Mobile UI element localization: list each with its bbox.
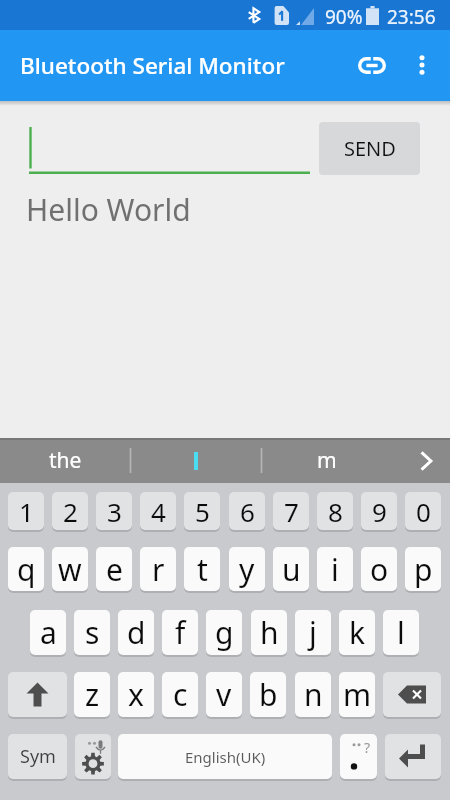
button[interactable]: 1 (8, 492, 44, 530)
button[interactable]: 0 (405, 492, 441, 530)
staticText: English(UK) (185, 747, 266, 767)
button[interactable]: q (8, 547, 44, 591)
button[interactable]: g (206, 610, 242, 655)
staticText: 23:56 (387, 4, 436, 30)
button[interactable]: 2 (52, 492, 88, 530)
button[interactable]: Backspace (383, 672, 441, 717)
button[interactable]: i (317, 547, 353, 591)
staticText: o (370, 549, 389, 590)
staticText: s (85, 612, 100, 653)
staticText: i (331, 549, 339, 590)
staticText: n (304, 674, 323, 715)
button[interactable]: 6 (229, 492, 265, 530)
staticText: 90% (325, 4, 363, 30)
button[interactable]: o (361, 547, 397, 591)
staticText: Hello World (26, 189, 191, 230)
staticText: 0 (416, 494, 431, 529)
button[interactable]: k (339, 610, 375, 655)
button[interactable]: s (74, 610, 110, 655)
staticText: SEND (344, 135, 396, 162)
staticText: f (175, 612, 186, 653)
button[interactable]: v (206, 672, 242, 717)
button[interactable]: Period (340, 734, 377, 779)
staticText: r (152, 549, 165, 590)
button[interactable]: SEND (319, 122, 420, 175)
staticText: 8 (328, 494, 343, 529)
button[interactable]: c (162, 672, 198, 717)
staticText: m (317, 446, 337, 475)
staticText: e (106, 549, 123, 590)
button[interactable]: Shift (8, 672, 67, 717)
staticText: ? (364, 738, 371, 757)
staticText: u (282, 549, 301, 590)
staticText: 9 (372, 494, 387, 529)
button[interactable]: Connect device (348, 41, 396, 89)
staticText: a (40, 612, 57, 653)
button[interactable]: f (162, 610, 198, 655)
button[interactable]: z (74, 672, 110, 717)
staticText: b (259, 674, 278, 715)
staticText: x (128, 674, 144, 715)
button[interactable]: a (30, 610, 66, 655)
button[interactable]: m (339, 672, 375, 717)
button[interactable]: 8 (317, 492, 353, 530)
button[interactable]: y (229, 547, 265, 591)
staticText: 3 (107, 494, 122, 529)
button[interactable]: More options (398, 41, 446, 89)
staticText: v (216, 674, 232, 715)
button[interactable]: Enter (385, 734, 441, 779)
button[interactable]: English(UK) (118, 734, 332, 779)
button[interactable]: n (295, 672, 331, 717)
button[interactable]: p (405, 547, 441, 591)
staticText: Sym (20, 744, 56, 769)
button[interactable]: e (96, 547, 132, 591)
staticText: m (343, 674, 372, 715)
staticText: l (397, 612, 405, 653)
staticText: 6 (240, 494, 255, 529)
button[interactable]: u (273, 547, 309, 591)
staticText: w (58, 549, 82, 590)
staticText: 4 (151, 494, 166, 529)
staticText: h (260, 612, 279, 653)
staticText: 5 (195, 494, 210, 529)
button[interactable]: 9 (361, 492, 397, 530)
button[interactable]: t (184, 547, 220, 591)
staticText: t (197, 549, 208, 590)
staticText: 7 (284, 494, 299, 529)
button[interactable]: Sym (8, 734, 67, 779)
button[interactable]: b (250, 672, 286, 717)
button[interactable]: 4 (140, 492, 176, 530)
staticText: y (239, 549, 255, 590)
button[interactable]: Message input (29, 125, 310, 175)
button[interactable]: 3 (96, 492, 132, 530)
button[interactable]: j (295, 610, 331, 655)
staticText: p (414, 549, 433, 590)
staticText: d (127, 612, 146, 653)
button[interactable]: Settings (75, 734, 111, 779)
staticText: g (215, 612, 234, 653)
button[interactable]: Expand suggestions (402, 438, 450, 483)
button[interactable]: x (118, 672, 154, 717)
staticText: k (349, 612, 366, 653)
staticText: z (85, 674, 100, 715)
button[interactable]: l (383, 610, 419, 655)
staticText: 2 (63, 494, 78, 529)
button[interactable]: m (262, 438, 392, 483)
staticText: the (49, 446, 82, 475)
button[interactable]: the (0, 438, 130, 483)
button[interactable]: w (52, 547, 88, 591)
staticText: j (309, 612, 317, 653)
button[interactable]: 5 (184, 492, 220, 530)
staticText: q (17, 549, 36, 590)
button[interactable]: d (118, 610, 154, 655)
button[interactable] (131, 438, 261, 483)
staticText: Bluetooth Serial Monitor (20, 50, 285, 81)
staticText: 1 (19, 494, 34, 529)
button[interactable]: r (140, 547, 176, 591)
button[interactable]: 7 (273, 492, 309, 530)
staticText: c (173, 674, 188, 715)
button[interactable]: h (251, 610, 287, 655)
